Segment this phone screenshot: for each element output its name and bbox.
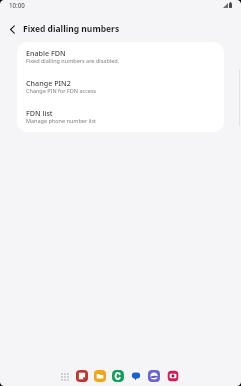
- button[interactable]: Change PIN2: [17, 72, 224, 102]
- button[interactable]: Phone: [112, 370, 124, 382]
- staticText: Fixed dialling numbers: [23, 23, 120, 35]
- staticText: FDN list: [26, 108, 53, 118]
- button[interactable]: Messages: [130, 370, 142, 382]
- staticText: Fixed dialling numbers are disabled.: [26, 57, 120, 64]
- button[interactable]: Camera: [167, 370, 179, 382]
- button[interactable]: Navigate up: [4, 21, 20, 37]
- button[interactable]: FDN list: [17, 102, 224, 132]
- button[interactable]: Enable FDN: [17, 42, 224, 72]
- staticText: 10:00: [9, 1, 25, 9]
- button[interactable]: Samsung Notes: [76, 370, 88, 382]
- staticText: Enable FDN: [26, 48, 66, 58]
- staticText: Change PIN2: [26, 78, 71, 88]
- button[interactable]: Internet: [148, 370, 160, 382]
- button[interactable]: My Files: [94, 370, 106, 382]
- staticText: Manage phone number list: [26, 117, 97, 124]
- staticText: Change PIN for FDN access: [26, 87, 97, 94]
- button[interactable]: Apps: [58, 370, 71, 383]
